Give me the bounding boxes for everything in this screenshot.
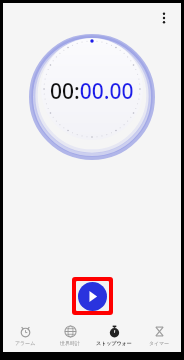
button[interactable]: タイマー <box>137 323 181 348</box>
staticText: アラーム <box>15 340 36 346</box>
staticText: 00:00.00 <box>50 77 134 106</box>
button[interactable]: More options <box>153 7 175 29</box>
staticText: ストップウォー <box>96 340 132 346</box>
button[interactable]: ストップウォー <box>92 323 136 348</box>
staticText: 世界時計 <box>60 340 80 346</box>
button[interactable]: Start stopwatch <box>78 282 107 311</box>
button[interactable]: 世界時計 <box>48 323 92 348</box>
staticText: タイマー <box>149 340 170 346</box>
button[interactable]: アラーム <box>3 323 47 348</box>
